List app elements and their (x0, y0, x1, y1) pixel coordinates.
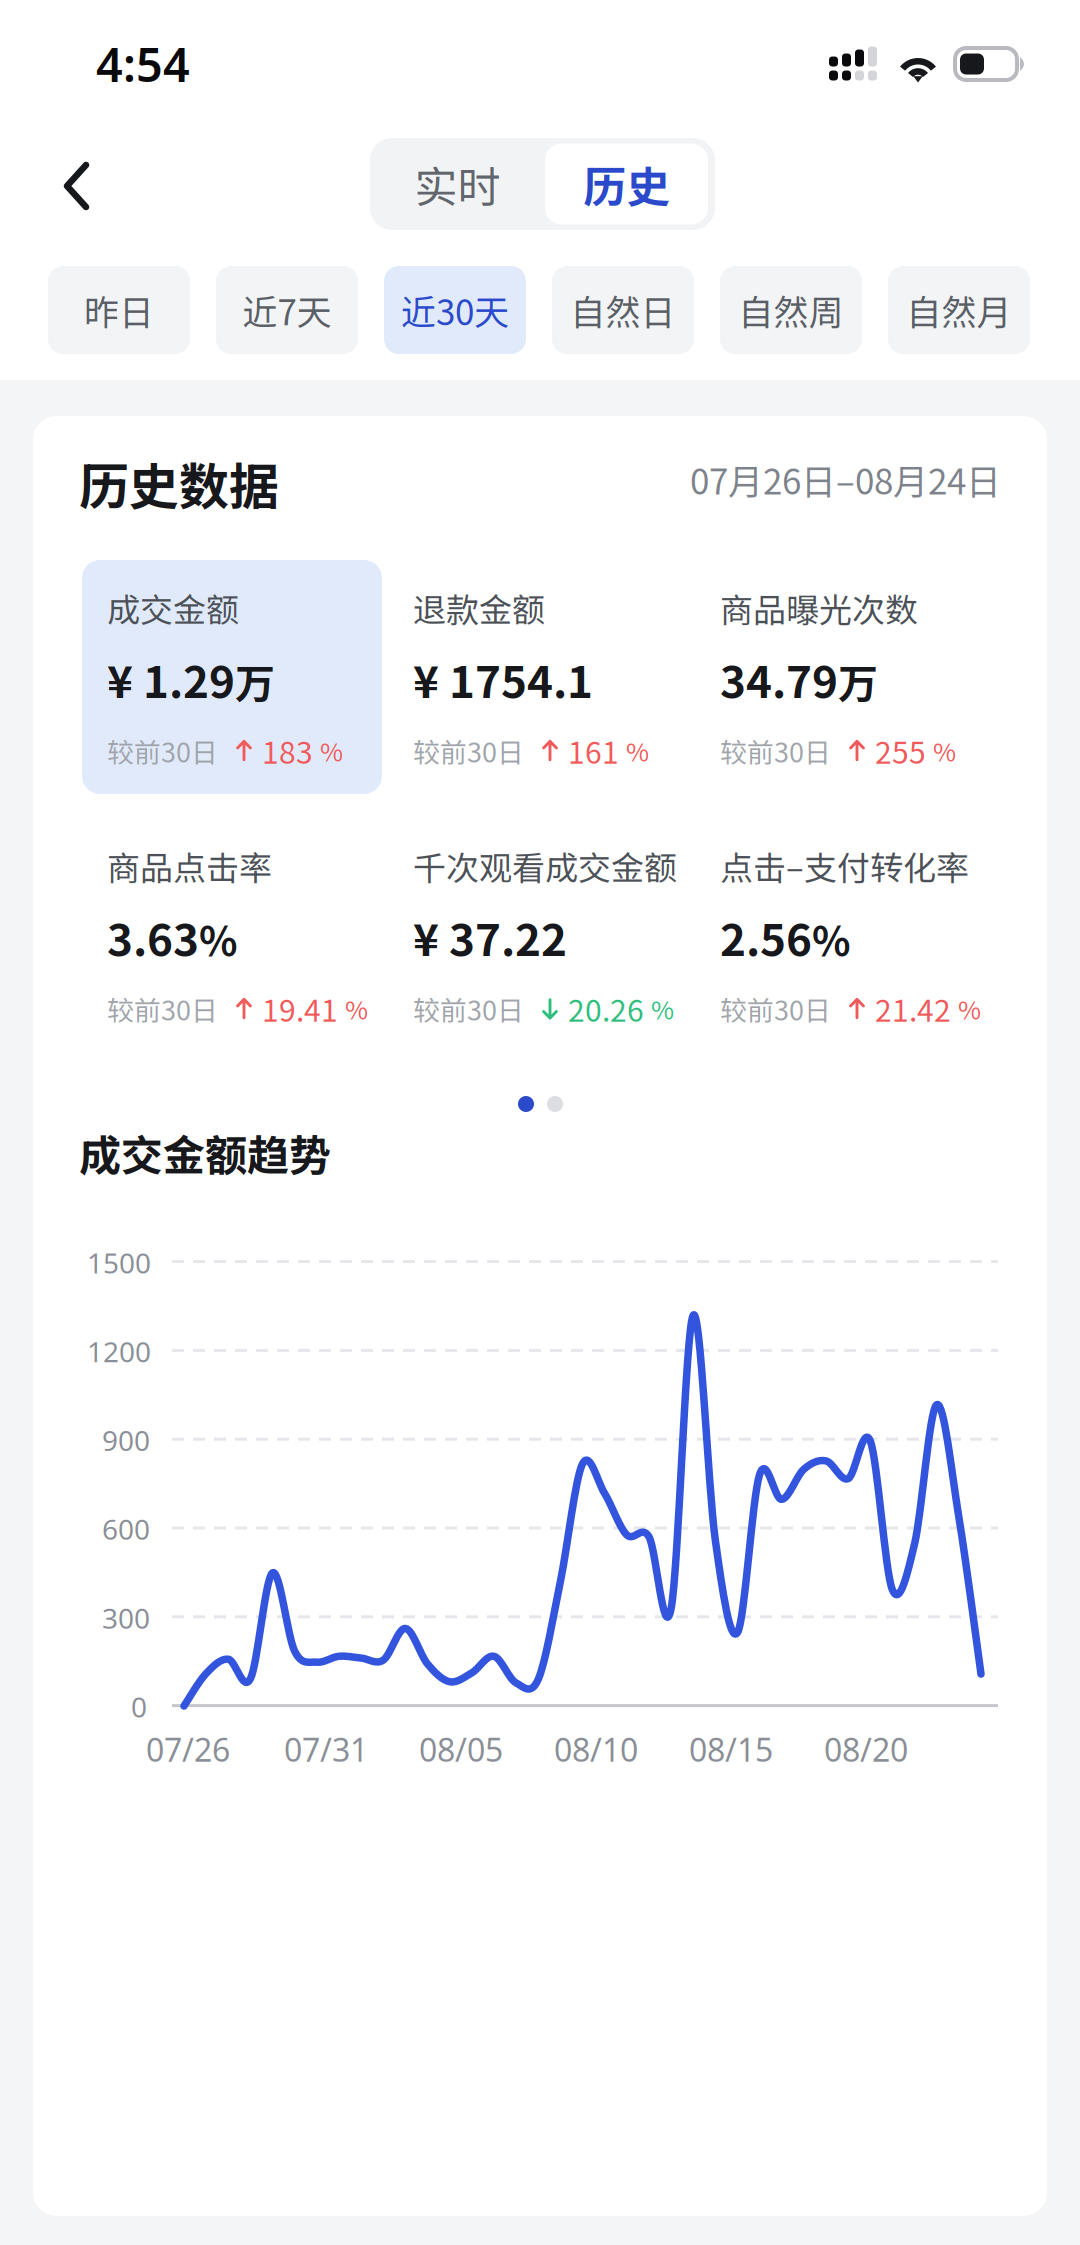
staticText: 161 (568, 729, 619, 772)
staticText: % (345, 991, 368, 1027)
staticText: 较前30日 (107, 731, 218, 770)
staticText: 0 (131, 1688, 147, 1725)
staticText: 昨日 (84, 285, 154, 335)
staticText: 自然月 (906, 285, 1011, 335)
button[interactable]: 历史 (370, 138, 533, 219)
staticText: 08/20 (824, 1728, 908, 1770)
staticText: 较前30日 (413, 731, 524, 770)
staticText: 退款金额 (413, 584, 545, 632)
staticText: 千次观看成交金额 (413, 842, 677, 890)
staticText: 历史数据 (79, 447, 279, 519)
staticText: % (199, 910, 238, 967)
staticText: 19.41 (262, 987, 338, 1030)
staticText: 3.63 (107, 905, 199, 969)
staticText: 自然周 (738, 285, 843, 335)
staticText: 万 (235, 652, 275, 709)
staticText: 07/31 (284, 1728, 368, 1770)
button[interactable]: 近30天 (384, 266, 526, 354)
staticText: 21.42 (875, 987, 951, 1030)
staticText: 较前30日 (107, 989, 218, 1028)
staticText: ¥ 37.22 (413, 905, 567, 969)
staticText: 20.26 (568, 987, 644, 1030)
staticText: 900 (102, 1422, 150, 1459)
staticText: % (651, 991, 674, 1027)
staticText: 1500 (87, 1244, 151, 1281)
staticText: 万 (838, 652, 878, 709)
staticText: 较前30日 (413, 989, 524, 1028)
staticText: 255 (875, 729, 926, 772)
staticText: 成交金额 (107, 584, 239, 632)
button[interactable]: 实时 (370, 138, 545, 230)
staticText: 成交金额趋势 (79, 1122, 331, 1183)
staticText: 点击–支付转化率 (720, 842, 969, 890)
staticText: % (933, 733, 956, 769)
staticText: % (812, 910, 851, 967)
button[interactable]: 自然周 (720, 266, 862, 354)
staticText: 300 (102, 1599, 150, 1636)
staticText: 600 (102, 1510, 150, 1548)
button[interactable]: 近7天 (216, 266, 358, 354)
staticText: 4:54 (96, 33, 190, 95)
staticText: 实时 (414, 153, 500, 215)
staticText: 07月26日–08月24日 (690, 454, 1001, 505)
staticText: 较前30日 (720, 989, 831, 1028)
staticText: 1200 (87, 1333, 151, 1370)
staticText: 较前30日 (720, 731, 831, 770)
staticText: 183 (262, 729, 313, 772)
staticText: 近7天 (242, 285, 331, 335)
staticText: 08/05 (419, 1728, 503, 1770)
staticText: 08/10 (554, 1728, 638, 1770)
staticText: % (626, 733, 649, 769)
staticText: 08/15 (689, 1728, 773, 1770)
staticText: % (320, 733, 343, 769)
button[interactable]: 昨日 (48, 266, 190, 354)
staticText: 07/26 (146, 1728, 230, 1770)
staticText: 商品点击率 (107, 842, 272, 890)
staticText: 商品曝光次数 (720, 584, 918, 632)
staticText: ¥ 1.29 (107, 647, 235, 711)
button[interactable]: 自然月 (888, 266, 1030, 354)
staticText: 34.79 (720, 647, 838, 711)
staticText: ¥ 1754.1 (413, 647, 593, 711)
staticText: 历史 (583, 153, 669, 215)
button[interactable]: 自然日 (552, 266, 694, 354)
staticText: 自然日 (570, 285, 675, 335)
staticText: % (958, 991, 981, 1027)
staticText: 近30天 (401, 285, 509, 335)
staticText: 2.56 (720, 905, 812, 969)
button[interactable]: Back (34, 140, 120, 232)
